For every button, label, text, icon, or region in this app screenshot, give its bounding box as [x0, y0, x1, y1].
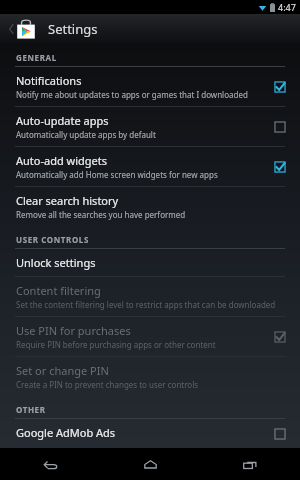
staticText: Use PIN for purchases	[16, 323, 131, 338]
button[interactable]: Google AdMob Ads	[0, 419, 300, 448]
button[interactable]: Back	[0, 448, 100, 480]
staticText: Set the content filtering level to restr…	[16, 299, 276, 310]
staticText: Unlock settings	[16, 255, 96, 270]
staticText: Require PIN before purchasing apps or ot…	[16, 339, 216, 350]
staticText: Notify me about updates to apps or games…	[16, 89, 248, 100]
staticText: Auto-update apps	[16, 113, 109, 128]
staticText: Content filtering	[16, 283, 101, 298]
button[interactable]: Set or change PIN	[0, 357, 300, 396]
staticText: GENERAL	[16, 52, 57, 63]
staticText: Settings	[48, 20, 98, 38]
button[interactable]: Content filtering	[0, 277, 300, 316]
staticText: USER CONTROLS	[16, 234, 89, 245]
staticText: Notifications	[16, 73, 82, 88]
staticText: Clear search history	[16, 193, 119, 208]
button[interactable]: Auto-add widgets	[0, 147, 300, 186]
button[interactable]: Back	[4, 14, 40, 44]
staticText: Remove all the searches you have perform…	[16, 209, 186, 220]
button[interactable]: Unlock settings	[0, 249, 300, 276]
staticText: Auto-add widgets	[16, 153, 108, 168]
staticText: Automatically add Home screen widgets fo…	[16, 169, 218, 180]
button[interactable]: Recent apps	[200, 448, 300, 480]
staticText: Google AdMob Ads	[16, 425, 116, 440]
staticText: Set or change PIN	[16, 363, 109, 378]
staticText: 4:47	[278, 1, 296, 13]
staticText: Automatically update apps by default	[16, 129, 156, 140]
button[interactable]: Home	[100, 448, 200, 480]
button[interactable]: Clear search history	[0, 187, 300, 226]
staticText: Create a PIN to prevent changes to user …	[16, 379, 199, 390]
button[interactable]: Notifications	[0, 67, 300, 106]
button[interactable]: Auto-update apps	[0, 107, 300, 146]
button[interactable]: Use PIN for purchases	[0, 317, 300, 356]
staticText: OTHER	[16, 404, 46, 415]
